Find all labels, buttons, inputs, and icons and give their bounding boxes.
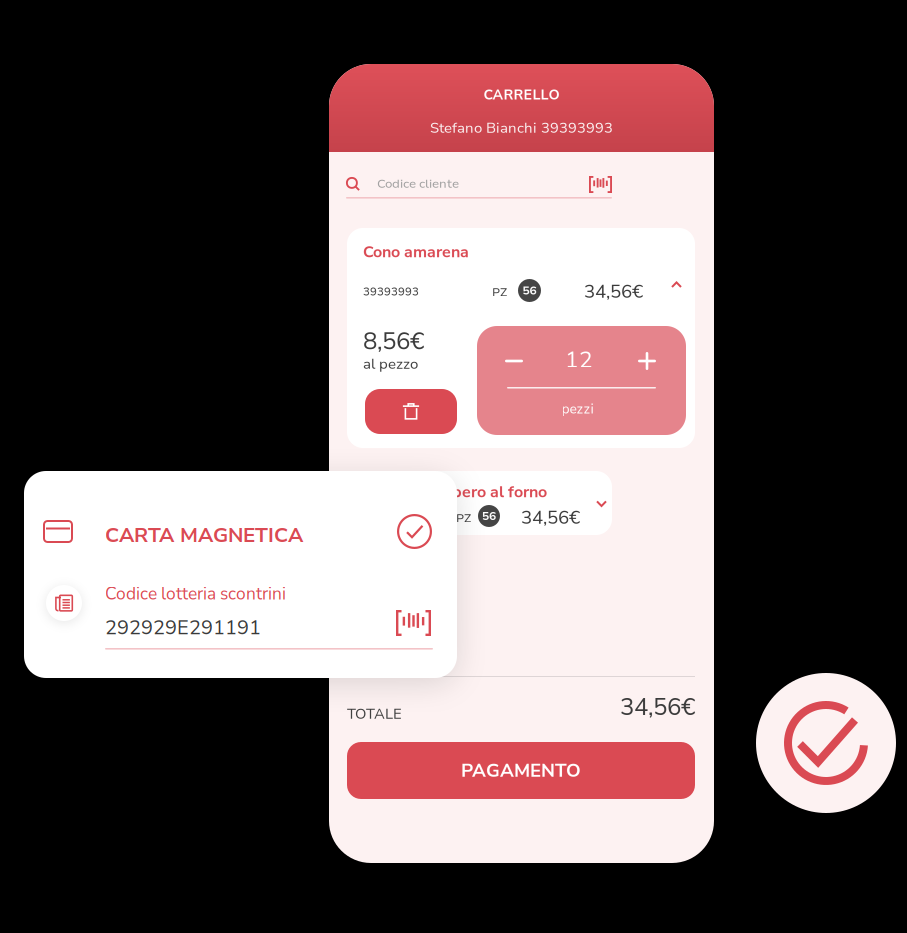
staticText: al pezzo [363, 354, 418, 374]
staticText: TOTALE [347, 704, 402, 724]
staticText: 34,56€ [584, 279, 643, 304]
staticText: 8,56€ [363, 325, 424, 358]
staticText: 56 [482, 508, 496, 524]
staticText: PZ [492, 284, 507, 300]
staticText: PAGAMENTO [461, 758, 581, 783]
staticText: Codice cliente [377, 175, 459, 192]
staticText: pezzi [561, 400, 593, 418]
staticText: PZ [456, 510, 471, 526]
staticText: 39393993 [363, 284, 419, 299]
button[interactable]: Aumenta quantità [626, 345, 668, 377]
staticText: 12 [565, 344, 593, 375]
staticText: 34,56€ [620, 691, 695, 723]
staticText: 34,56€ [521, 505, 580, 530]
staticText: 39393993 [363, 510, 419, 525]
staticText: Codice lotteria scontrini [105, 582, 286, 606]
staticText: CARRELLO [483, 85, 559, 105]
button[interactable]: PAGAMENTO [347, 742, 695, 799]
staticText: Cono amarena [363, 241, 469, 263]
staticText: 56 [522, 282, 536, 299]
staticText: Pane con pepero al forno [363, 481, 547, 503]
button[interactable]: Diminuisci quantità [493, 345, 535, 377]
staticText: CARTA MAGNETICA [105, 521, 303, 549]
staticText: 292929E291191 [105, 614, 261, 641]
button[interactable]: Elimina articolo [365, 389, 457, 434]
staticText: Stefano Bianchi 39393993 [430, 118, 613, 138]
